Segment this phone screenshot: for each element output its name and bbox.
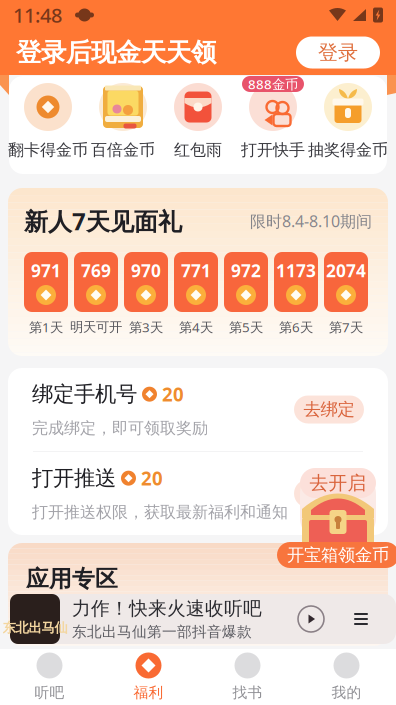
staticText: 1173 xyxy=(276,259,316,282)
staticText: 东北出马仙 xyxy=(2,620,67,636)
staticText: 11:48 xyxy=(13,2,62,28)
button[interactable]: 我的 xyxy=(297,649,396,705)
button[interactable]: 972 xyxy=(224,252,268,312)
staticText: 去开启 xyxy=(309,471,366,494)
staticText: 百倍金币 xyxy=(91,140,155,160)
button[interactable]: Play xyxy=(296,604,326,634)
staticText: 红包雨 xyxy=(174,140,222,160)
staticText: 开宝箱领金币 xyxy=(287,544,389,566)
staticText: 打开推送 xyxy=(32,465,116,491)
button[interactable]: 红包雨 xyxy=(160,76,235,174)
staticText: 第7天 xyxy=(329,318,363,336)
button[interactable]: 听吧 xyxy=(0,649,99,705)
button[interactable]: 抽奖得金币 xyxy=(310,76,385,174)
staticText: 翻卡得金币 xyxy=(8,140,88,160)
staticText: 769 xyxy=(81,259,111,282)
button[interactable]: 970 xyxy=(124,252,168,312)
button[interactable]: 769 xyxy=(74,252,118,312)
staticText: 第3天 xyxy=(129,318,163,336)
staticText: 找书 xyxy=(232,683,262,701)
button[interactable]: 2074 xyxy=(324,252,368,312)
button[interactable]: 登录 xyxy=(296,36,380,68)
button[interactable]: 百倍金币 xyxy=(85,76,160,174)
button[interactable]: 东北出马仙 xyxy=(10,594,60,644)
staticText: 绑定手机号 xyxy=(32,381,137,407)
staticText: 第1天 xyxy=(29,318,63,336)
staticText: 971 xyxy=(31,259,61,282)
button[interactable]: 福利 xyxy=(99,649,198,705)
button[interactable]: 找书 xyxy=(198,649,297,705)
button[interactable]: 去绑定 xyxy=(294,395,364,423)
staticText: 听吧 xyxy=(34,683,64,701)
staticText: 完成绑定，即可领取奖励 xyxy=(32,418,208,438)
staticText: 2074 xyxy=(326,259,366,282)
staticText: 970 xyxy=(131,259,161,282)
button[interactable]: Playlist xyxy=(348,606,374,632)
staticText: 第5天 xyxy=(229,318,263,336)
staticText: 我的 xyxy=(331,683,361,701)
staticText: 新人7天见面礼 xyxy=(24,205,182,237)
staticText: 972 xyxy=(231,259,261,282)
staticText: 力作！快来火速收听吧 xyxy=(72,597,262,620)
staticText: 东北出马仙第一部抖音爆款 xyxy=(72,623,252,641)
staticText: 去绑定 xyxy=(303,399,354,420)
button[interactable]: 去开启 xyxy=(294,479,364,507)
staticText: 应用专区 xyxy=(26,565,118,593)
staticText: 第4天 xyxy=(179,318,213,336)
staticText: 888金币 xyxy=(248,75,298,93)
staticText: 第6天 xyxy=(279,318,313,336)
button[interactable]: 翻卡得金币 xyxy=(10,76,85,174)
staticText: 明天可开 xyxy=(70,319,122,335)
button[interactable]: 888金币 xyxy=(235,76,310,174)
staticText: 去开启 xyxy=(303,483,354,504)
staticText: 福利 xyxy=(133,683,163,701)
staticText: 登录后现金天天领 xyxy=(16,37,216,68)
button[interactable]: 771 xyxy=(174,252,218,312)
staticText: 打开快手 xyxy=(241,140,305,160)
staticText: 打开推送权限，获取最新福利和通知 xyxy=(32,502,288,522)
staticText: 登录 xyxy=(318,40,358,65)
button[interactable]: 1173 xyxy=(274,252,318,312)
staticText: 771 xyxy=(181,259,211,282)
staticText: 限时8.4-8.10期间 xyxy=(250,210,372,232)
staticText: 抽奖得金币 xyxy=(308,140,388,160)
staticText: 20 xyxy=(141,466,163,491)
staticText: 20 xyxy=(162,382,184,407)
button[interactable]: 去开启 xyxy=(292,468,384,572)
button[interactable]: 971 xyxy=(24,252,68,312)
